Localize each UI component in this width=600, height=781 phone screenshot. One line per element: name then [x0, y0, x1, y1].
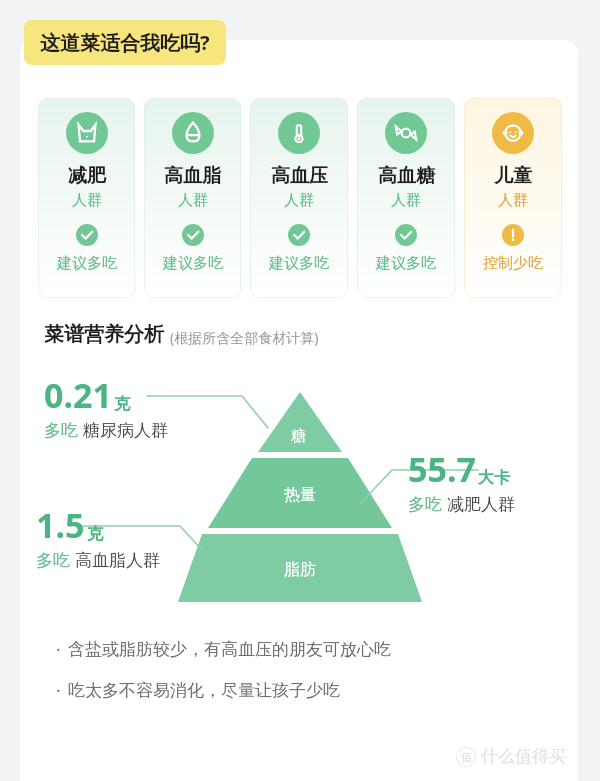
staticText: 含盐或脂肪较少，有高血压的朋友可放心吃 [68, 639, 391, 660]
button[interactable]: 儿童 [464, 98, 562, 298]
staticText: 减肥人群 [447, 494, 515, 515]
staticText: 糖 [291, 427, 306, 446]
staticText: 多吃 [36, 550, 70, 571]
staticText: 高血脂 [164, 164, 221, 188]
staticText: 脂肪 [284, 560, 316, 580]
staticText: 0.21 [44, 372, 112, 418]
staticText: 1.5 [36, 502, 85, 548]
staticText: 控制少吃 [483, 254, 543, 273]
staticText: 高血糖 [378, 164, 435, 188]
button[interactable]: 减肥 [38, 98, 135, 298]
staticText: · [56, 679, 61, 702]
staticText: 建议多吃 [269, 254, 329, 273]
staticText: 高血压 [271, 164, 328, 188]
staticText: 吃太多不容易消化，尽量让孩子少吃 [68, 680, 340, 701]
staticText: 高血脂人群 [75, 550, 160, 571]
staticText: 建议多吃 [57, 254, 117, 273]
staticText: 建议多吃 [376, 254, 436, 273]
staticText: 人群 [178, 191, 208, 210]
staticText: 人群 [72, 191, 102, 210]
staticText: 菜谱营养分析 [44, 322, 164, 347]
staticText: 人群 [391, 191, 421, 210]
button[interactable]: 这道菜适合我吃吗? [24, 20, 226, 65]
staticText: 糖尿病人群 [83, 420, 168, 441]
staticText: 大卡 [478, 468, 510, 488]
staticText: 热量 [284, 485, 316, 505]
staticText: · [56, 638, 61, 661]
staticText: 55.7 [408, 446, 476, 492]
staticText: 克 [114, 394, 130, 414]
staticText: 减肥 [68, 164, 106, 188]
staticText: 多吃 [408, 494, 442, 515]
button[interactable]: 高血糖 [357, 98, 455, 298]
staticText: 儿童 [494, 164, 532, 188]
staticText: 什么值得买 [481, 746, 566, 767]
staticText: 这道菜适合我吃吗? [40, 29, 210, 56]
staticText: 值 [461, 750, 472, 764]
button[interactable]: 高血压 [250, 98, 348, 298]
staticText: 人群 [498, 191, 528, 210]
staticText: 多吃 [44, 420, 78, 441]
staticText: 克 [87, 524, 103, 544]
staticText: (根据所含全部食材计算) [170, 328, 319, 347]
staticText: 人群 [284, 191, 314, 210]
button[interactable]: 高血脂 [144, 98, 241, 298]
staticText: 建议多吃 [163, 254, 223, 273]
